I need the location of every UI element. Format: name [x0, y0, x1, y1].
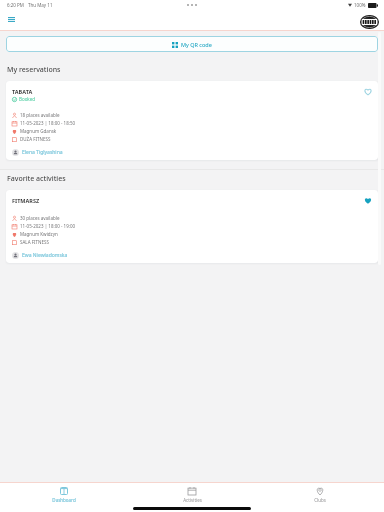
staticText: Elena Tiglyashina [22, 149, 63, 156]
staticText: Ewa Niewiadomska [22, 252, 68, 259]
button[interactable]: Magnum logo [360, 14, 379, 30]
staticText: SALA FITNESS [20, 239, 49, 245]
button[interactable]: Open navigation menu [4, 14, 18, 25]
staticText: Favorite activities [7, 174, 66, 184]
button[interactable]: Favourite [363, 86, 373, 96]
staticText: TABATA [12, 88, 33, 95]
button[interactable]: FITMARSZ [6, 190, 378, 263]
button[interactable]: TABATA [6, 81, 378, 160]
staticText: 18 places available [20, 112, 60, 118]
staticText: 30 places available [20, 215, 60, 221]
staticText: Activities [183, 497, 202, 503]
staticText: Clubs [314, 497, 326, 503]
button[interactable]: Dashboard [0, 484, 128, 503]
button[interactable]: Clubs [256, 484, 384, 503]
staticText: Booked [19, 96, 36, 102]
button[interactable]: My QR code [6, 36, 378, 52]
staticText: Magnum Gdansk [20, 128, 57, 134]
staticText: FITMARSZ [12, 197, 40, 204]
staticText: DUŻA FITNESS [20, 136, 51, 142]
staticText: My reservations [7, 65, 61, 75]
staticText: 11-05-2023 | 18:00 - 19:00 [20, 223, 76, 229]
staticText: Thu May 11 [28, 2, 53, 8]
button[interactable]: Favourite [363, 195, 373, 205]
staticText: 11-05-2023 | 18:00 - 18:50 [20, 120, 76, 126]
staticText: Dashboard [52, 497, 76, 503]
staticText: Magnum Kwidzyn [20, 231, 58, 237]
staticText: 100% [354, 2, 366, 8]
staticText: 6:20 PM [7, 2, 24, 8]
staticText: My QR code [181, 41, 212, 48]
button[interactable]: Activities [128, 484, 256, 503]
